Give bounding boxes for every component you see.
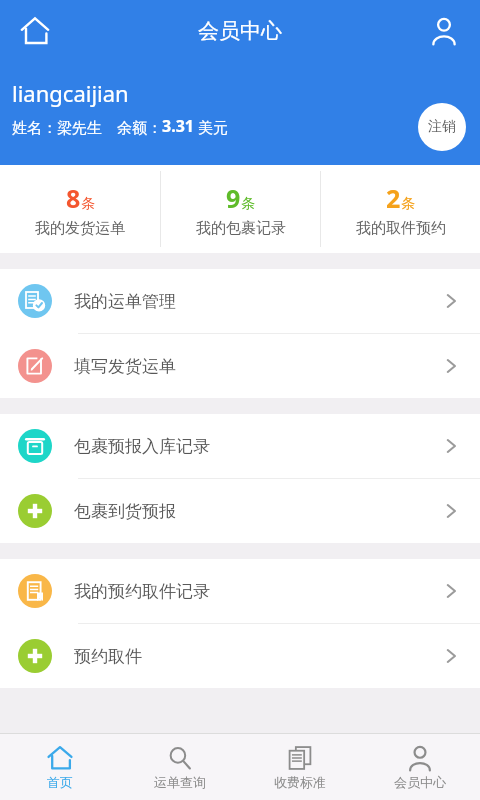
staticText: 首页 (47, 774, 73, 790)
staticText: 8 (66, 181, 81, 215)
staticText: 9 (226, 181, 241, 215)
button[interactable]: 8 (0, 165, 160, 253)
button[interactable]: 包裹预报入库记录 (0, 414, 480, 478)
button[interactable]: 个人中心 (418, 5, 470, 57)
staticText: 姓名：梁先生 余额： (12, 117, 162, 137)
staticText: 我的运单管理 (74, 291, 176, 312)
button[interactable]: 首页 (8, 4, 62, 58)
staticText: 包裹到货预报 (74, 501, 176, 522)
staticText: 条 (241, 195, 255, 213)
staticText: 我的取件预约 (356, 219, 446, 238)
button[interactable]: 我的运单管理 (0, 269, 480, 333)
staticText: 注销 (428, 118, 456, 136)
button[interactable]: 预约取件 (0, 624, 480, 688)
staticText: 美元 (194, 117, 228, 137)
button[interactable]: 收费标准 (240, 734, 360, 800)
staticText: liangcaijian (12, 78, 129, 108)
button[interactable]: 首页 (0, 734, 120, 800)
staticText: 会员中心 (198, 18, 282, 44)
staticText: 收费标准 (274, 774, 326, 790)
staticText: 我的发货运单 (35, 219, 125, 238)
button[interactable]: 运单查询 (120, 734, 240, 800)
staticText: 条 (401, 195, 415, 213)
staticText: 填写发货运单 (74, 356, 176, 377)
button[interactable]: 填写发货运单 (0, 334, 480, 398)
staticText: 我的预约取件记录 (74, 581, 210, 602)
staticText: 3.31 (162, 115, 194, 137)
staticText: 2 (386, 181, 401, 215)
button[interactable]: 2 (321, 165, 480, 253)
staticText: 我的包裹记录 (196, 219, 286, 238)
staticText: 运单查询 (154, 774, 206, 790)
button[interactable]: 9 (161, 165, 320, 253)
button[interactable]: 我的预约取件记录 (0, 559, 480, 623)
staticText: 预约取件 (74, 646, 142, 667)
staticText: 包裹预报入库记录 (74, 436, 210, 457)
staticText: 会员中心 (394, 774, 446, 790)
button[interactable]: 包裹到货预报 (0, 479, 480, 543)
staticText: 条 (81, 195, 95, 213)
button[interactable]: 注销 (418, 103, 466, 151)
button[interactable]: 会员中心 (360, 734, 480, 800)
